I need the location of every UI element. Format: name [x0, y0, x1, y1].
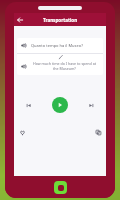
- button[interactable]: Back: [14, 14, 26, 26]
- button[interactable]: Home: [54, 181, 67, 194]
- staticText: Quanto tempo ha il Museo?: [31, 43, 83, 48]
- button[interactable]: Copy: [92, 126, 104, 138]
- button[interactable]: Quanto tempo ha il Museo?: [17, 38, 103, 53]
- staticText: Transportation: [43, 17, 78, 23]
- button[interactable]: Edit: [57, 53, 64, 60]
- button[interactable]: How much time do I have to spend at the …: [17, 60, 103, 72]
- button[interactable]: Next: [85, 99, 98, 112]
- button[interactable]: Previous: [22, 99, 35, 112]
- staticText: How much time do I have to spend at the …: [30, 61, 99, 71]
- button[interactable]: Play: [52, 97, 68, 113]
- button[interactable]: Favorite: [16, 126, 28, 138]
